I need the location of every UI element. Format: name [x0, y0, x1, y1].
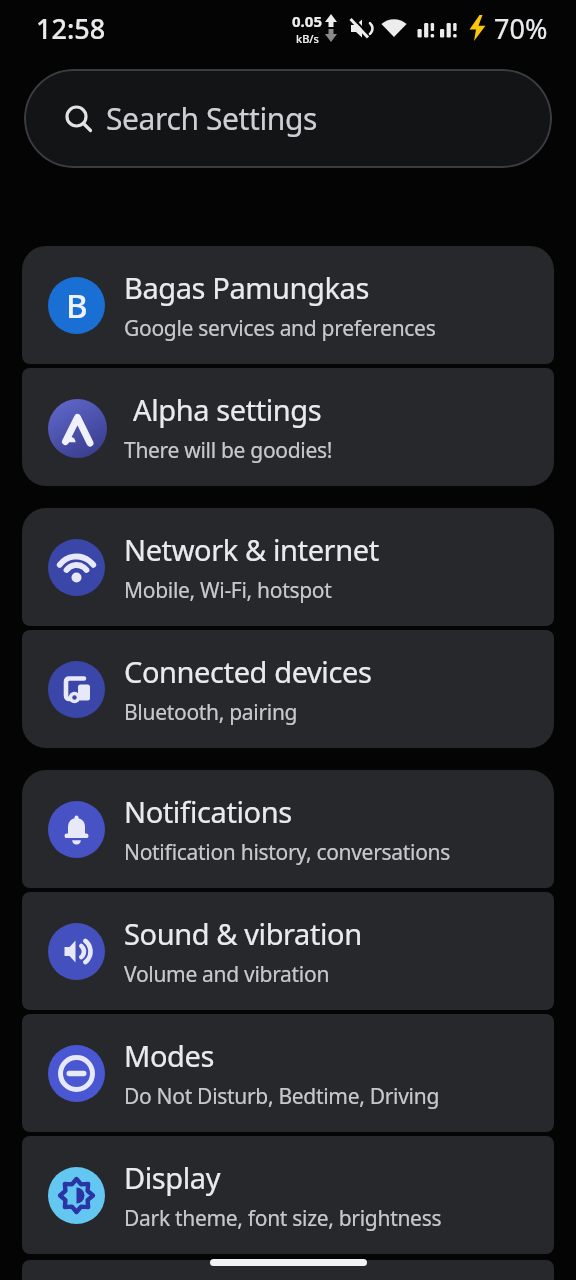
button[interactable]: Network & internet — [22, 508, 554, 626]
button[interactable]: Search Settings — [24, 69, 552, 168]
staticText: Display — [124, 1158, 221, 1197]
staticText: kB/s — [296, 31, 319, 46]
staticText: B — [66, 283, 88, 328]
staticText: Network & internet — [124, 530, 379, 569]
staticText: Connected devices — [124, 652, 372, 691]
staticText: Notifications — [124, 792, 292, 831]
staticText: 70% — [494, 10, 548, 47]
staticText: Search Settings — [106, 98, 317, 139]
staticText: Notification history, conversations — [124, 838, 451, 867]
staticText: Volume and vibration — [124, 960, 330, 989]
button[interactable]: Modes — [22, 1014, 554, 1132]
staticText: Dark theme, font size, brightness — [124, 1204, 442, 1233]
staticText: Mobile, Wi-Fi, hotspot — [124, 576, 332, 605]
button[interactable]: B — [22, 246, 554, 364]
button[interactable]: Alpha settings — [22, 368, 554, 486]
staticText: There will be goodies! — [124, 436, 333, 465]
button[interactable]: Sound & vibration — [22, 892, 554, 1010]
staticText: Bagas Pamungkas — [124, 268, 369, 307]
staticText: Do Not Disturb, Bedtime, Driving — [124, 1082, 440, 1111]
staticText: Alpha settings — [133, 390, 322, 429]
staticText: 0.05 — [292, 11, 322, 31]
staticText: Bluetooth, pairing — [124, 698, 298, 727]
staticText: Modes — [124, 1036, 214, 1075]
button[interactable]: Notifications — [22, 770, 554, 888]
staticText: Sound & vibration — [124, 914, 362, 953]
staticText: Google services and preferences — [124, 314, 436, 343]
button[interactable]: Connected devices — [22, 630, 554, 748]
staticText: 12:58 — [36, 10, 106, 47]
button[interactable]: Display — [22, 1136, 554, 1254]
